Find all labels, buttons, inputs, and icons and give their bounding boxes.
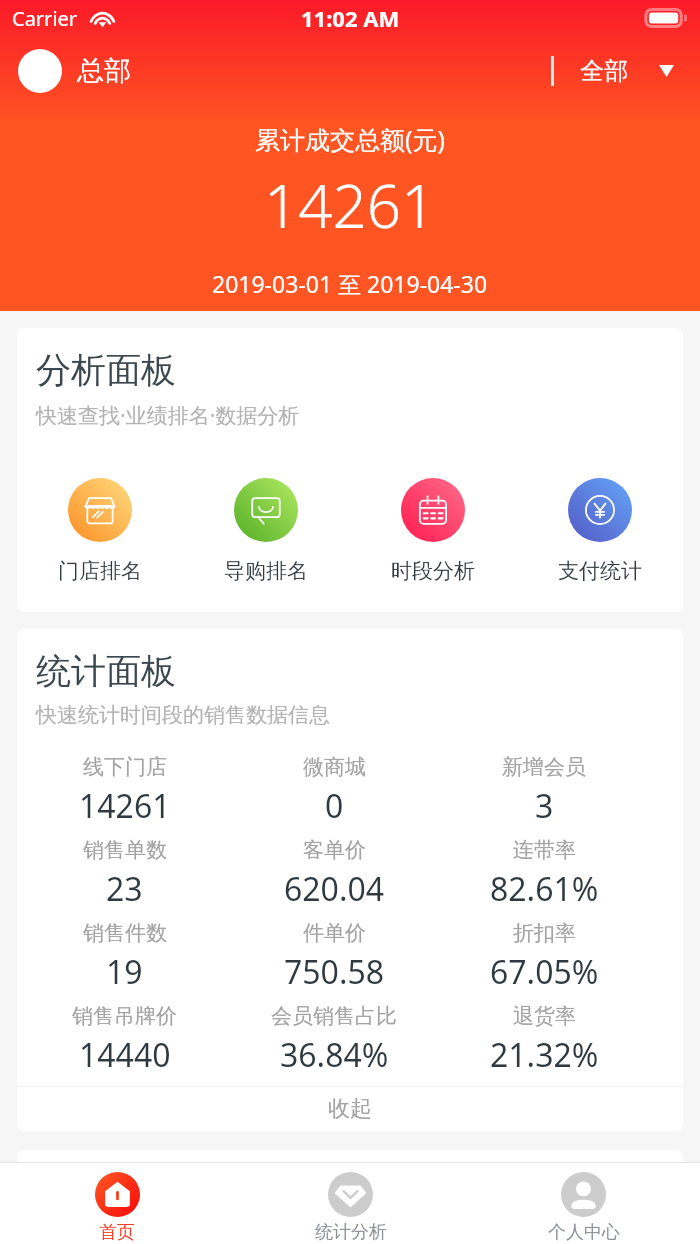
button[interactable]: 首页	[0, 1163, 234, 1244]
staticText: 750.58	[284, 950, 385, 994]
staticText: 快速查找·业绩排名·数据分析	[36, 401, 300, 430]
staticText: 折扣率	[513, 920, 576, 946]
staticText: 36.84%	[280, 1033, 389, 1077]
staticText: 19	[106, 950, 143, 994]
staticText: 件单价	[303, 920, 366, 946]
staticText: 总部	[77, 54, 131, 88]
staticText: 个人中心	[548, 1221, 620, 1244]
staticText: 收起	[328, 1095, 372, 1123]
button[interactable]: 导购排名	[183, 478, 349, 584]
staticText: 导购排名	[224, 558, 308, 584]
staticText: 新增会员	[502, 754, 586, 780]
staticText: 客单价	[303, 837, 366, 863]
staticText: 销售吊牌价	[72, 1003, 177, 1029]
staticText: 82.61%	[490, 867, 599, 911]
button[interactable]: 支付统计	[516, 478, 683, 584]
button[interactable]: 时段分析	[349, 478, 516, 584]
staticText: 2019-03-01 至 2019-04-30	[212, 268, 488, 299]
staticText: 销售件数	[83, 920, 167, 946]
staticText: 统计分析	[315, 1221, 387, 1244]
staticText: 统计面板	[36, 649, 176, 693]
other: 个人中心	[561, 1172, 606, 1217]
staticText: 14261	[264, 164, 436, 246]
button[interactable]: 全部	[551, 56, 700, 86]
staticText: 首页	[99, 1221, 135, 1244]
staticText: 3	[535, 784, 554, 828]
button[interactable]: 门店排名	[17, 478, 183, 584]
staticText: 14261	[79, 784, 171, 828]
staticText: 微商城	[303, 754, 366, 780]
staticText: 支付统计	[558, 558, 642, 584]
other: 首页	[95, 1172, 140, 1217]
staticText: 23	[106, 867, 143, 911]
staticText: 67.05%	[490, 950, 599, 994]
staticText: 全部	[580, 56, 628, 86]
staticText: 线下门店	[83, 754, 167, 780]
button[interactable]: 统计分析	[234, 1163, 467, 1244]
other: 统计分析	[328, 1172, 373, 1217]
staticText: 累计成交总额(元)	[255, 122, 446, 156]
staticText: 时段分析	[391, 558, 475, 584]
staticText: 0	[325, 784, 344, 828]
staticText: 退货率	[513, 1003, 576, 1029]
staticText: 620.04	[284, 867, 385, 911]
staticText: 21.32%	[490, 1033, 599, 1077]
staticText: 销售单数	[83, 837, 167, 863]
button[interactable]: 总部	[0, 49, 139, 93]
staticText: 连带率	[513, 837, 576, 863]
staticText: Carrier	[12, 5, 78, 32]
staticText: 11:02 AM	[301, 3, 400, 33]
staticText: 门店排名	[58, 558, 142, 584]
staticText: 快速统计时间段的销售数据信息	[36, 702, 330, 728]
button[interactable]: 收起	[17, 1087, 683, 1131]
staticText: 会员销售占比	[271, 1003, 397, 1029]
button[interactable]: 个人中心	[467, 1163, 700, 1244]
staticText: 14440	[79, 1033, 171, 1077]
staticText: 分析面板	[36, 348, 176, 392]
